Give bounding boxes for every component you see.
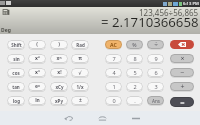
button[interactable]: sin — [7, 54, 25, 63]
button[interactable]: eˣ — [28, 82, 46, 91]
button[interactable]: ln — [28, 96, 46, 105]
staticText: cos — [12, 70, 20, 76]
button[interactable]: Recents — [124, 111, 148, 125]
staticText: tan — [12, 84, 20, 90]
staticText: π — [78, 55, 82, 62]
button[interactable]: ( — [28, 40, 46, 49]
staticText: × — [180, 54, 185, 63]
button[interactable]: 6 — [147, 68, 164, 77]
button[interactable]: x! — [50, 68, 68, 77]
staticText: Deg — [1, 27, 11, 34]
staticText: % — [132, 41, 137, 48]
staticText: ÷ — [154, 40, 158, 49]
staticText: ± — [79, 97, 82, 104]
staticText: AC — [110, 41, 117, 48]
staticText: ln — [35, 97, 40, 104]
button[interactable]: Back — [56, 111, 80, 125]
staticText: − — [180, 68, 185, 77]
staticText: sin — [13, 56, 20, 62]
staticText: Rad — [76, 42, 85, 48]
staticText: 8 — [133, 55, 137, 63]
staticText: = — [180, 97, 185, 107]
button[interactable]: 7 — [105, 54, 122, 63]
button[interactable]: x² — [28, 54, 46, 63]
staticText: Shift — [11, 42, 22, 48]
button[interactable]: x³ — [28, 68, 46, 77]
staticText: 3 — [154, 83, 158, 91]
button[interactable]: Shift — [7, 40, 25, 49]
button[interactable]: 0 — [105, 96, 122, 105]
staticText: 6:13 PM — [183, 1, 199, 7]
staticText: 1/x — [76, 84, 84, 90]
button[interactable]: cos — [7, 68, 25, 77]
button[interactable]: 8 — [126, 54, 143, 63]
button[interactable]: xⁿ — [50, 54, 68, 63]
button[interactable]: xPy — [50, 96, 68, 105]
button[interactable]: √ — [71, 68, 89, 77]
button[interactable]: Backspace — [170, 40, 194, 49]
button[interactable]: % — [126, 40, 143, 49]
button[interactable]: 1 — [105, 82, 122, 91]
button[interactable]: Ans — [147, 96, 164, 105]
staticText: 1 — [112, 83, 116, 91]
button[interactable]: . — [126, 96, 143, 105]
button[interactable]: 1/x — [71, 82, 89, 91]
staticText: 6 — [154, 69, 158, 77]
staticText: 7 — [112, 55, 116, 63]
staticText: x³ — [35, 69, 40, 76]
staticText: 2 — [133, 83, 137, 91]
button[interactable]: − — [170, 68, 194, 77]
staticText: Ans — [152, 98, 160, 104]
staticText: + — [180, 82, 185, 91]
staticText: 9 — [154, 55, 158, 63]
staticText: log — [13, 98, 20, 104]
staticText: 5 — [133, 69, 137, 77]
staticText: . — [134, 97, 136, 105]
staticText: 123,456÷56,865 — [139, 7, 199, 18]
button[interactable]: × — [170, 54, 194, 63]
button[interactable]: Home — [90, 111, 114, 125]
button[interactable]: 2 — [126, 82, 143, 91]
staticText: xPy — [55, 98, 63, 104]
button[interactable]: 5 — [126, 68, 143, 77]
button[interactable]: π — [71, 54, 89, 63]
staticText: 4 — [112, 69, 116, 77]
button[interactable]: Rad — [71, 40, 89, 49]
staticText: eˣ — [35, 83, 40, 90]
staticText: ( — [36, 41, 38, 48]
button[interactable]: 9 — [147, 54, 164, 63]
staticText: 0 — [112, 97, 116, 105]
staticText: ) — [58, 41, 60, 48]
button[interactable]: AC — [105, 40, 122, 49]
button[interactable]: History — [2, 8, 10, 16]
button[interactable]: xCy — [50, 82, 68, 91]
button[interactable]: ± — [71, 96, 89, 105]
staticText: √ — [78, 70, 82, 76]
button[interactable]: + — [170, 82, 194, 91]
button[interactable]: = — [170, 97, 194, 107]
button[interactable]: ÷ — [147, 40, 164, 49]
staticText: xCy — [55, 84, 64, 90]
button[interactable]: 4 — [105, 68, 122, 77]
staticText: xⁿ — [56, 55, 62, 62]
staticText: x² — [35, 55, 40, 62]
button[interactable]: 3 — [147, 82, 164, 91]
button[interactable]: tan — [7, 82, 25, 91]
staticText: = 2.1710366658 — [101, 13, 199, 31]
staticText: x! — [57, 69, 62, 76]
button[interactable]: log — [7, 96, 25, 105]
button[interactable]: ) — [50, 40, 68, 49]
